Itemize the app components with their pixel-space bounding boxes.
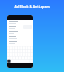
- button[interactable]: [7, 15, 33, 20]
- staticText: Ad Block & Anti-spam: [0, 4, 64, 8]
